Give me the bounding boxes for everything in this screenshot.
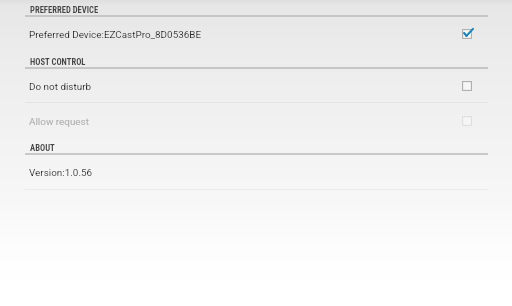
button[interactable] [0, 155, 512, 189]
button[interactable] [0, 16, 512, 52]
staticText: HOST CONTROL [30, 57, 86, 67]
staticText: Allow request [29, 116, 89, 128]
button: Allow request [453, 107, 481, 135]
staticText: ABOUT [30, 143, 55, 153]
staticText: Do not disturb [29, 81, 92, 93]
button [0, 104, 512, 137]
staticText: PREFERRED DEVICE [30, 5, 99, 15]
button[interactable]: Preferred Device:EZCastPro_8D0536BE [453, 20, 481, 48]
staticText: Preferred Device:EZCastPro_8D0536BE [29, 29, 202, 41]
button[interactable]: Do not disturb [453, 72, 481, 100]
button[interactable] [0, 69, 512, 102]
staticText: Version:1.0.56 [29, 167, 93, 179]
